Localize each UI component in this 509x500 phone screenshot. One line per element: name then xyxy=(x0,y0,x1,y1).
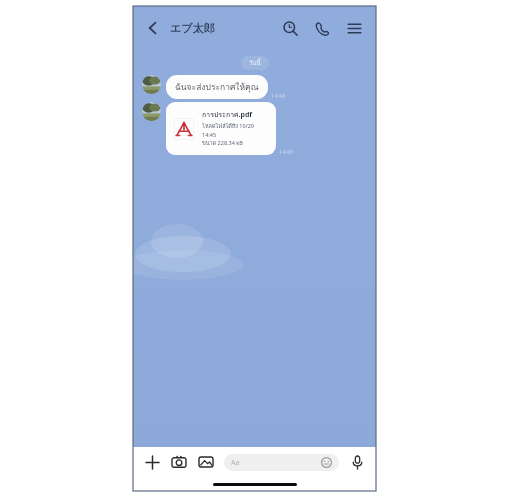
staticText: การประกาศ.pdf xyxy=(202,109,253,120)
button[interactable]: Camera xyxy=(169,452,189,472)
button[interactable]: Add xyxy=(142,452,162,472)
staticText: Aa xyxy=(231,458,240,468)
button[interactable]: Photos xyxy=(196,452,216,472)
staticText: ขนาด 228.34 kB xyxy=(202,139,243,148)
button[interactable]: ฉันจะส่งประกาศให้คุณ xyxy=(166,75,268,99)
button[interactable]: Emoji xyxy=(321,457,332,468)
staticText: 14:44 xyxy=(271,92,286,99)
staticText: โหลดไฟล์ได้ถึง 10/29 14:45 xyxy=(202,122,269,138)
button[interactable]: Back xyxy=(143,18,163,38)
staticText: 14:45 xyxy=(279,148,294,155)
button[interactable]: Aa xyxy=(224,454,339,471)
button[interactable]: Menu xyxy=(342,16,366,40)
staticText: ฉันจะส่งประกาศให้คุณ xyxy=(175,80,259,94)
staticText: エブ太郎 xyxy=(170,21,215,35)
button[interactable]: Voice message xyxy=(347,452,367,472)
button[interactable]: Profile photo xyxy=(142,75,161,94)
button[interactable]: エブ太郎 xyxy=(170,21,215,35)
button[interactable]: Profile photo xyxy=(142,102,161,121)
button[interactable]: Search xyxy=(278,16,302,40)
button[interactable]: การประกาศ.pdf xyxy=(166,102,276,155)
button[interactable]: Call xyxy=(310,16,334,40)
staticText: วันนี้ xyxy=(249,58,261,68)
